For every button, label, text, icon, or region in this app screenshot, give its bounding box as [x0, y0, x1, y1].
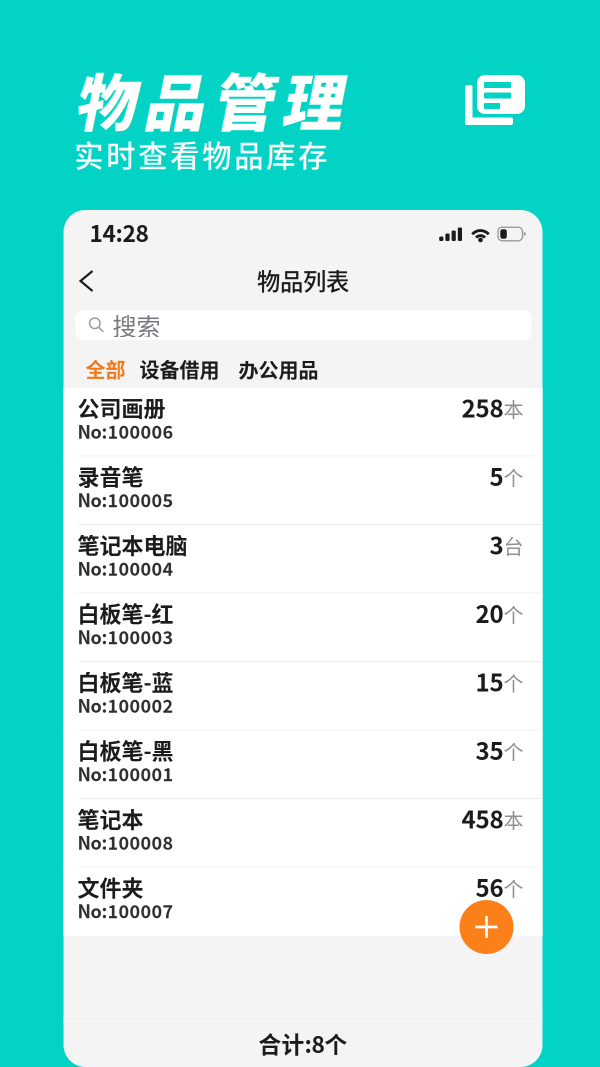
staticText: 本 [503, 394, 523, 423]
button[interactable]: 白板笔-红 [63, 593, 542, 662]
staticText: No:100004 [77, 555, 173, 581]
button[interactable]: 笔记本电脑 [63, 525, 542, 593]
staticText: 56 [475, 869, 503, 904]
button[interactable]: 白板笔-蓝 [63, 662, 542, 730]
staticText: 个 [503, 463, 523, 492]
staticText: No:100003 [77, 623, 173, 650]
staticText: 实时查看物品库存 [74, 133, 327, 175]
staticText: 5 [489, 458, 503, 493]
button[interactable]: 笔记本 [63, 799, 542, 867]
staticText: 个 [503, 737, 523, 766]
button[interactable]: 设备借用 [139, 354, 238, 383]
button[interactable]: 搜索 [75, 310, 531, 340]
staticText: 录音笔 [77, 460, 143, 491]
button[interactable]: 公司画册 [63, 388, 542, 456]
staticText: 搜索 [112, 308, 160, 342]
button[interactable]: 录音笔 [63, 456, 542, 525]
staticText: No:100007 [77, 897, 173, 924]
staticText: 白板笔-蓝 [77, 665, 173, 697]
staticText: 458 [461, 801, 503, 835]
staticText: 物品列表 [257, 263, 349, 297]
staticText: 办公用品 [238, 354, 318, 383]
button[interactable]: 新增 [459, 900, 513, 954]
staticText: 20 [475, 595, 503, 630]
staticText: 35 [475, 732, 503, 767]
staticText: 258 [461, 390, 503, 424]
staticText: 合计:8个 [258, 1027, 347, 1059]
staticText: 笔记本电脑 [77, 528, 187, 560]
button[interactable]: 白板笔-黑 [63, 730, 542, 799]
staticText: 3 [489, 527, 503, 561]
staticText: No:100008 [77, 829, 173, 855]
staticText: No:100005 [77, 486, 173, 513]
staticText: 笔记本 [77, 802, 143, 834]
button[interactable]: 文件夹 [63, 867, 542, 936]
staticText: 14:28 [89, 216, 148, 248]
staticText: 白板笔-黑 [77, 734, 173, 765]
staticText: No:100006 [77, 418, 173, 444]
staticText: 设备借用 [139, 354, 219, 383]
staticText: 15 [475, 664, 503, 698]
staticText: 公司画册 [77, 391, 165, 423]
staticText: 个 [503, 668, 523, 697]
button[interactable]: 返回 [63, 262, 110, 304]
button[interactable]: 全部 [85, 354, 139, 383]
staticText: 本 [503, 805, 523, 834]
staticText: 个 [503, 600, 523, 629]
staticText: 文件夹 [77, 871, 143, 902]
staticText: 个 [503, 874, 523, 903]
staticText: No:100002 [77, 692, 173, 718]
button[interactable]: 办公用品 [238, 354, 318, 383]
staticText: 物品管理 [73, 55, 341, 143]
staticText: 全部 [85, 354, 125, 383]
staticText: No:100001 [77, 760, 173, 787]
staticText: 白板笔-红 [77, 597, 173, 628]
staticText: 台 [503, 531, 523, 560]
